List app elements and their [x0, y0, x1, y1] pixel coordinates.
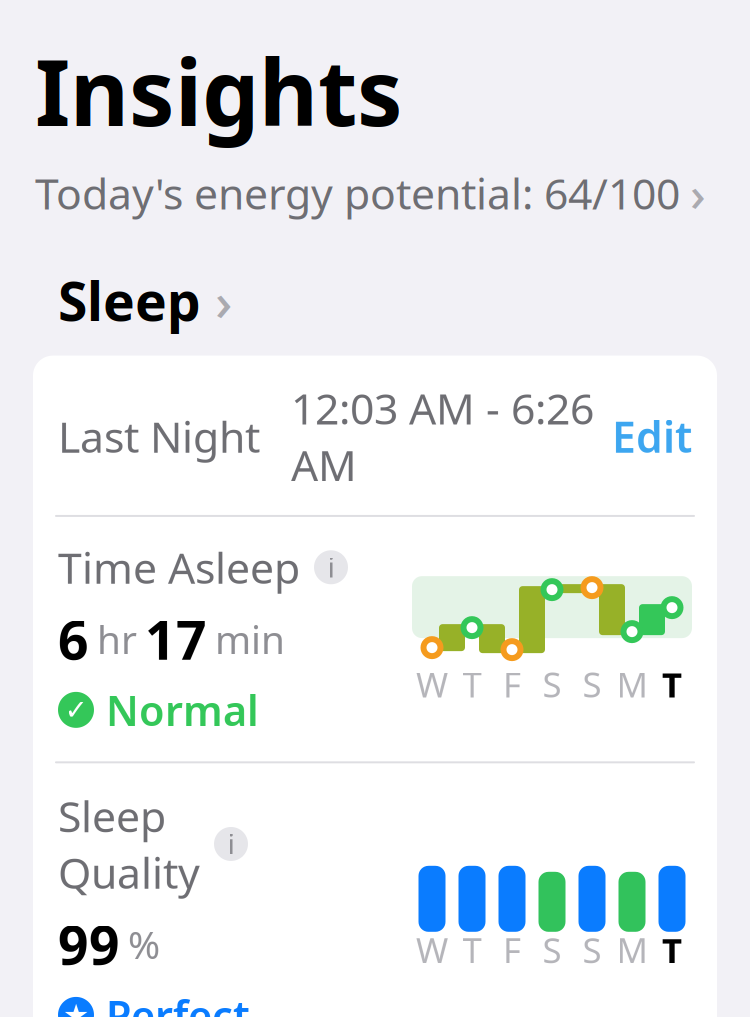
staticText: i [227, 826, 234, 862]
staticText: T [662, 661, 682, 707]
staticText: ✓ [64, 694, 87, 726]
staticText: T [462, 661, 481, 707]
staticText: Edit [612, 408, 692, 465]
staticText: S [542, 661, 561, 707]
staticText: › [215, 265, 232, 336]
staticText: % [128, 918, 160, 970]
staticText: T [662, 927, 682, 973]
staticText: min [215, 613, 285, 665]
staticText: Time Asleep [58, 539, 300, 596]
staticText: 17 [145, 604, 207, 674]
staticText: F [503, 661, 521, 707]
staticText: hr [97, 613, 137, 665]
staticText: Insights [35, 31, 403, 151]
staticText: S [542, 927, 561, 973]
staticText: W [416, 661, 448, 707]
button[interactable]: Today's energy potential: 64/100 [35, 151, 719, 225]
button[interactable]: Edit [594, 404, 692, 469]
staticText: Today's energy potential: 64/100 [35, 165, 680, 221]
staticText: Last Night [58, 408, 260, 465]
staticText: F [503, 927, 521, 973]
staticText: ★ [63, 998, 89, 1017]
staticText: Perfect [106, 987, 250, 1017]
staticText: Sleep Quality [58, 787, 200, 901]
staticText: › [690, 161, 706, 225]
staticText: 12:03 AM - 6:26 AM [291, 380, 594, 493]
staticText: W [416, 927, 448, 973]
staticText: Normal [106, 682, 259, 737]
staticText: T [462, 927, 481, 973]
staticText: S [582, 661, 601, 707]
button[interactable]: Sleep [0, 225, 232, 356]
staticText: 6 [58, 604, 89, 674]
staticText: Sleep [58, 265, 201, 336]
staticText: i [327, 550, 334, 585]
staticText: M [616, 661, 647, 707]
staticText: M [616, 927, 647, 973]
staticText: 99 [58, 909, 120, 979]
staticText: S [582, 927, 601, 973]
